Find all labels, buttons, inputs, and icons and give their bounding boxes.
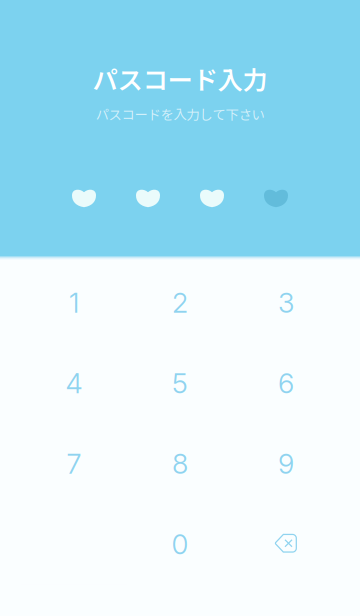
button[interactable]: 4 [21,343,127,423]
staticText: 2 [172,286,188,319]
staticText: 7 [66,447,81,480]
button[interactable]: 8 [127,423,233,504]
staticText: 0 [171,528,188,561]
button[interactable]: 0 [127,504,233,584]
staticText: 3 [278,286,294,319]
staticText: 6 [278,367,294,400]
button[interactable]: 7 [21,423,127,504]
button[interactable]: 2 [127,262,233,343]
button[interactable]: 3 [233,262,339,343]
button[interactable]: Delete [233,504,339,584]
button[interactable]: 6 [233,343,339,423]
staticText: 1 [69,286,79,319]
staticText: 9 [278,447,294,480]
button[interactable]: 5 [127,343,233,423]
staticText: パスコード入力 [92,60,267,97]
staticText: 5 [172,367,188,400]
button[interactable]: 1 [21,262,127,343]
staticText: 4 [65,367,82,400]
staticText: 8 [172,447,188,480]
button[interactable]: 9 [233,423,339,504]
staticText: パスコードを入力して下さい [95,104,264,124]
